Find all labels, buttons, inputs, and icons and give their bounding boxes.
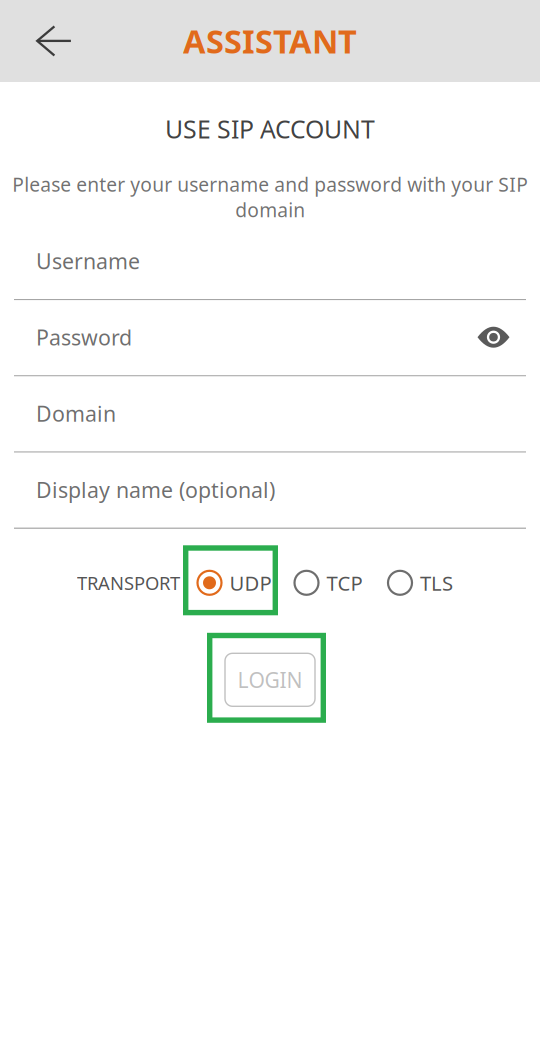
button[interactable]: Domain <box>0 383 540 460</box>
button[interactable]: UDP <box>196 569 271 596</box>
button[interactable]: Password <box>0 307 540 383</box>
staticText: ASSISTANT <box>183 19 357 63</box>
button[interactable]: TLS <box>387 569 453 596</box>
button[interactable]: TCP <box>293 569 362 596</box>
staticText: Username <box>36 247 140 275</box>
button[interactable]: Display name (optional) <box>0 460 540 536</box>
staticText: Domain <box>36 399 116 427</box>
staticText: Password <box>36 323 132 351</box>
staticText: LOGIN <box>237 666 302 694</box>
staticText: UDP <box>229 569 271 596</box>
button[interactable]: Username <box>0 231 540 307</box>
staticText: TCP <box>326 569 362 596</box>
staticText: TLS <box>420 569 453 596</box>
button[interactable]: LOGIN <box>225 653 315 706</box>
staticText: USE SIP ACCOUNT <box>165 112 375 145</box>
staticText: TRANSPORT <box>77 571 180 595</box>
button[interactable]: Back <box>0 0 92 82</box>
staticText: Please enter your username and password … <box>12 171 528 222</box>
staticText: Display name (optional) <box>36 475 275 504</box>
